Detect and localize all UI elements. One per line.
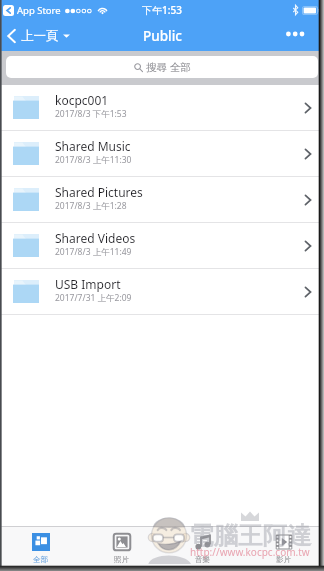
staticText: Shared Music <box>55 138 131 154</box>
staticText: 照片 <box>114 555 129 564</box>
staticText: 2017/8/3 上午11:49 <box>55 246 132 258</box>
button[interactable]: Shared Videos <box>0 223 324 268</box>
button[interactable]: 照片 <box>81 527 162 564</box>
staticText: http://www.kocpc.com.tw <box>190 545 310 559</box>
button[interactable]: 影片 <box>243 527 324 564</box>
staticText: USB Import <box>55 276 121 292</box>
button[interactable]: Shared Pictures <box>0 177 324 222</box>
staticText: 2017/7/31 上午2:09 <box>55 292 132 304</box>
staticText: App Store <box>17 4 61 17</box>
button[interactable]: kocpc001 <box>0 85 324 130</box>
button[interactable]: 搜尋 全部 <box>6 56 318 78</box>
button[interactable]: More options <box>284 20 324 51</box>
button[interactable]: USB Import <box>0 269 324 314</box>
button[interactable]: 全部 <box>0 527 81 564</box>
staticText: 2017/8/3 上午11:30 <box>55 154 132 166</box>
button[interactable]: 上一頁 <box>7 20 70 51</box>
button[interactable]: Back to App Store <box>3 5 14 16</box>
staticText: 搜尋 全部 <box>146 60 191 74</box>
button[interactable]: Shared Music <box>0 131 324 176</box>
staticText: 2017/8/3 下午1:53 <box>55 108 127 120</box>
button[interactable]: 音樂 <box>162 527 243 564</box>
staticText: 音樂 <box>195 555 210 564</box>
staticText: 2017/8/3 上午1:28 <box>55 200 127 212</box>
staticText: 電腦王阿達 <box>189 520 312 551</box>
staticText: 下午1:53 <box>142 3 182 17</box>
staticText: 影片 <box>276 555 291 564</box>
staticText: Shared Videos <box>55 230 136 246</box>
staticText: kocpc001 <box>55 92 109 108</box>
staticText: 全部 <box>33 555 48 564</box>
staticText: Public <box>143 27 182 45</box>
staticText: 上一頁 <box>21 28 59 44</box>
staticText: Shared Pictures <box>55 184 143 200</box>
